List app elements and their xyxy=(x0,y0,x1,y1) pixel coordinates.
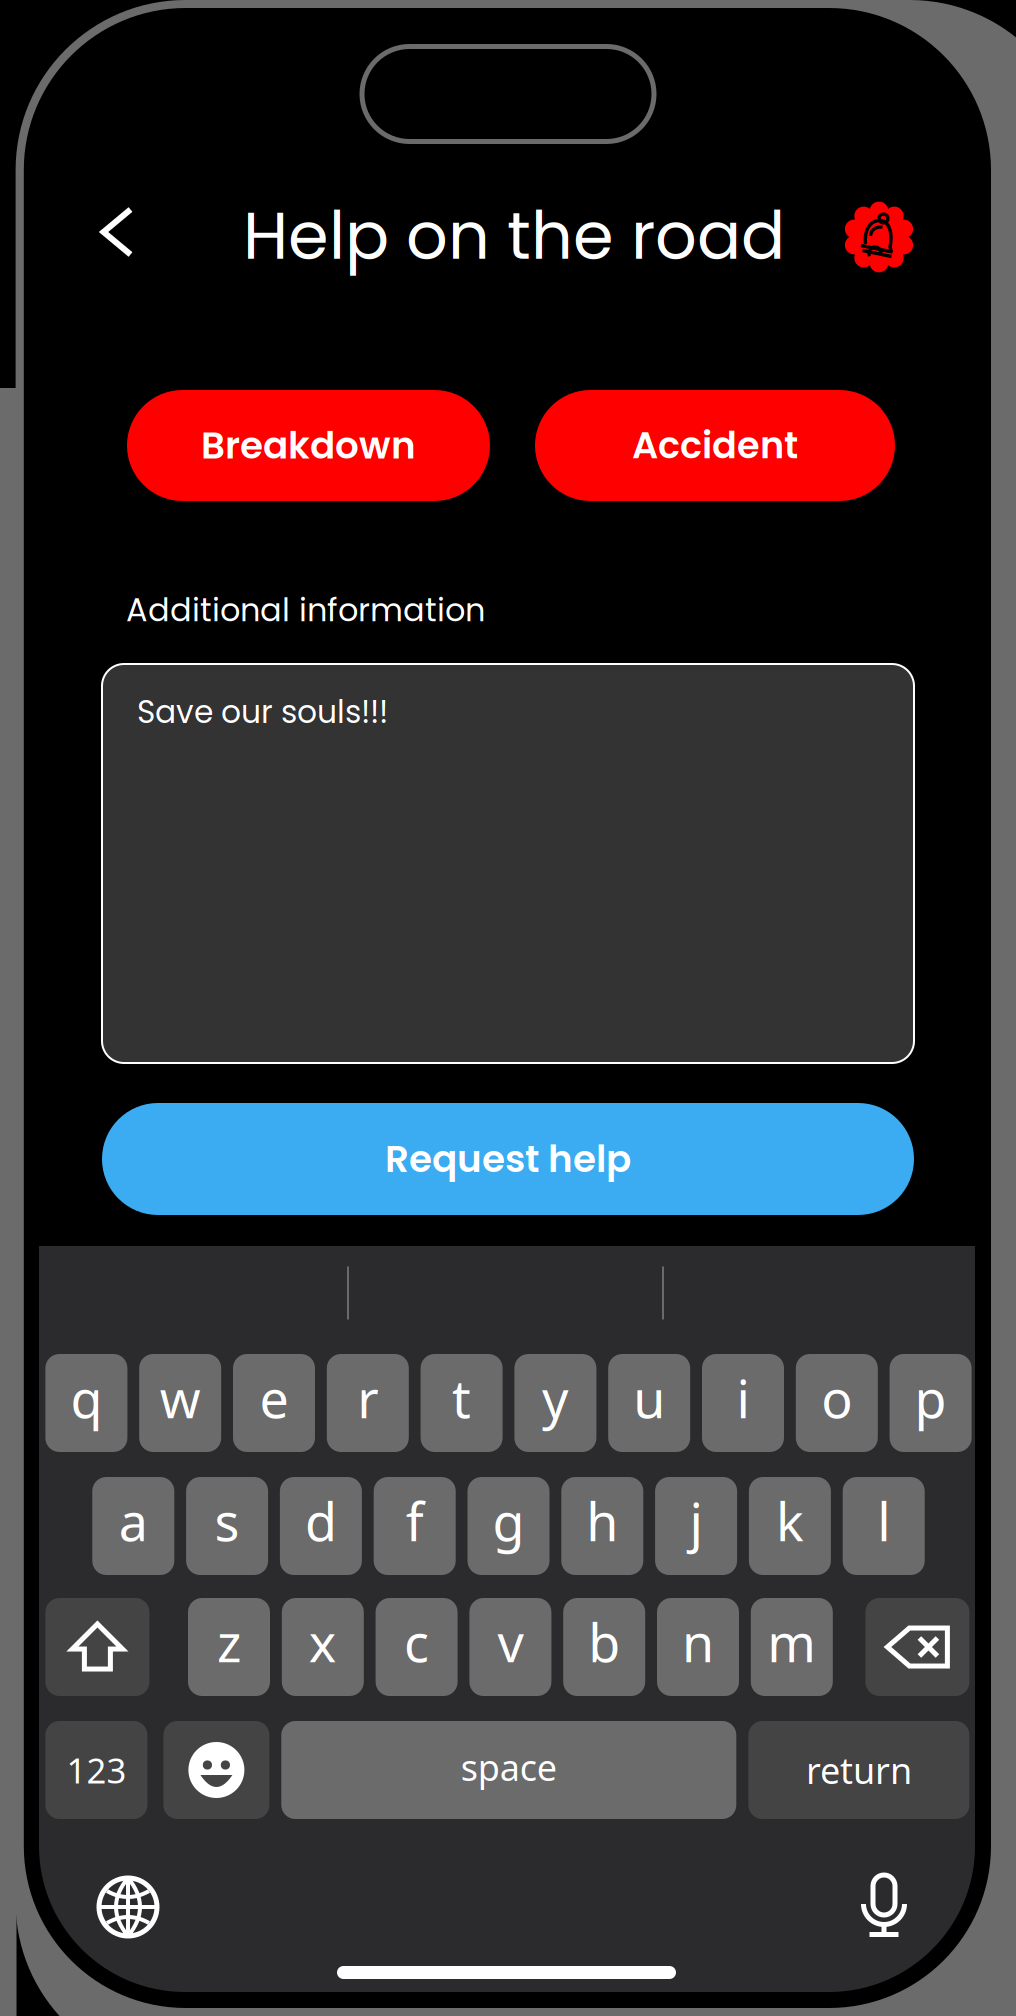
button[interactable]: return xyxy=(748,1721,969,1819)
staticText: l xyxy=(877,1486,890,1556)
staticText: i xyxy=(736,1363,749,1433)
staticText: Additional information xyxy=(126,588,485,632)
staticText: p xyxy=(915,1363,947,1433)
button[interactable]: i xyxy=(702,1354,784,1452)
button[interactable]: 123 xyxy=(45,1721,147,1819)
staticText: q xyxy=(70,1363,102,1433)
staticText: z xyxy=(217,1607,241,1677)
staticText: space xyxy=(461,1743,557,1791)
button[interactable]: Dictation xyxy=(853,1873,915,1939)
button[interactable]: b xyxy=(563,1598,645,1696)
button[interactable]: Request help xyxy=(102,1103,914,1215)
button[interactable]: c xyxy=(376,1598,458,1696)
staticText: Breakdown xyxy=(201,419,416,472)
button[interactable]: v xyxy=(469,1598,551,1696)
staticText: 123 xyxy=(66,1747,126,1793)
button[interactable]: u xyxy=(608,1354,690,1452)
staticText: s xyxy=(215,1486,240,1556)
staticText: n xyxy=(682,1607,714,1677)
button[interactable]: g xyxy=(467,1477,549,1575)
button[interactable]: q xyxy=(45,1354,127,1452)
button[interactable]: n xyxy=(657,1598,739,1696)
button[interactable]: k xyxy=(749,1477,831,1575)
staticText: m xyxy=(767,1607,816,1677)
button[interactable]: h xyxy=(561,1477,643,1575)
button[interactable]: x xyxy=(282,1598,364,1696)
button[interactable]: z xyxy=(188,1598,270,1696)
button[interactable]: j xyxy=(655,1477,737,1575)
staticText: Help on the road xyxy=(243,190,785,282)
button[interactable]: Accident xyxy=(535,390,895,501)
button[interactable]: Shift xyxy=(45,1598,149,1696)
button[interactable]: s xyxy=(186,1477,268,1575)
button[interactable]: t xyxy=(421,1354,503,1452)
staticText: x xyxy=(309,1607,337,1677)
staticText: e xyxy=(259,1363,288,1433)
button[interactable]: w xyxy=(139,1354,221,1452)
button[interactable]: d xyxy=(280,1477,362,1575)
staticText: Accident xyxy=(632,420,798,471)
staticText: j xyxy=(690,1486,703,1556)
staticText: Request help xyxy=(385,1133,631,1185)
staticText: Save our souls!!! xyxy=(137,690,388,734)
staticText: r xyxy=(357,1363,378,1433)
staticText: h xyxy=(586,1486,618,1556)
button[interactable]: p xyxy=(890,1354,972,1452)
button[interactable]: o xyxy=(796,1354,878,1452)
staticText: c xyxy=(404,1607,429,1677)
button[interactable]: Notifications xyxy=(843,201,915,273)
button[interactable]: Breakdown xyxy=(127,390,490,501)
button[interactable]: a xyxy=(92,1477,174,1575)
staticText: return xyxy=(806,1746,912,1794)
button[interactable]: l xyxy=(843,1477,925,1575)
button[interactable]: m xyxy=(751,1598,833,1696)
button[interactable]: e xyxy=(233,1354,315,1452)
staticText: d xyxy=(305,1486,337,1556)
staticText: f xyxy=(406,1486,424,1556)
button[interactable]: r xyxy=(327,1354,409,1452)
staticText: t xyxy=(452,1363,471,1433)
button[interactable]: space xyxy=(281,1721,736,1819)
staticText: w xyxy=(160,1363,201,1433)
staticText: o xyxy=(821,1363,852,1433)
staticText: k xyxy=(776,1486,804,1556)
button[interactable]: Emoji xyxy=(163,1721,269,1819)
button[interactable]: Delete xyxy=(865,1598,969,1696)
button[interactable]: Back xyxy=(77,192,157,272)
staticText: b xyxy=(588,1607,620,1677)
button[interactable]: y xyxy=(514,1354,596,1452)
staticText: y xyxy=(542,1363,569,1433)
button[interactable]: f xyxy=(374,1477,456,1575)
staticText: v xyxy=(497,1607,523,1677)
staticText: u xyxy=(633,1363,665,1433)
staticText: a xyxy=(119,1486,148,1556)
button[interactable]: Change keyboard xyxy=(97,1876,159,1938)
staticText: g xyxy=(492,1486,524,1556)
